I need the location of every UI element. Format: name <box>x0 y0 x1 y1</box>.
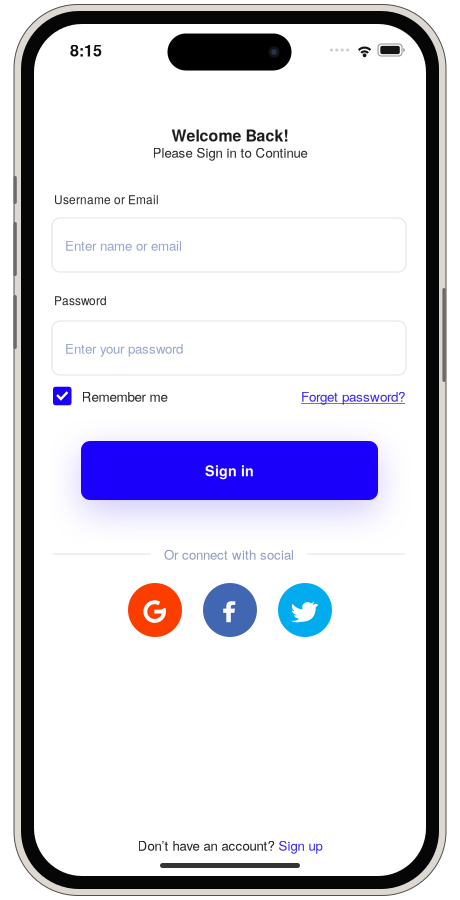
staticText: Sign up <box>278 835 322 854</box>
button[interactable]: Enter name or email <box>52 218 406 272</box>
staticText: Enter name or email <box>65 235 182 255</box>
staticText: Forget password? <box>301 386 405 406</box>
staticText: Username or Email <box>54 190 159 207</box>
staticText: Please Sign in to Continue <box>152 142 307 161</box>
staticText: Or connect with social <box>164 544 294 563</box>
button[interactable]: Sign up <box>278 835 322 854</box>
staticText: Don’t have an account? <box>137 835 274 854</box>
staticText: Sign in <box>205 460 254 481</box>
button[interactable]: Sign in with Google <box>128 583 182 637</box>
staticText: Password <box>54 291 107 308</box>
button[interactable]: Sign in with Twitter <box>278 583 332 637</box>
staticText: Remember me <box>81 386 167 406</box>
button[interactable]: Remember me <box>53 386 167 406</box>
button[interactable]: Enter your password <box>52 321 406 375</box>
staticText: Welcome Back! <box>171 124 288 146</box>
button[interactable]: Sign in <box>81 441 378 500</box>
staticText: Enter your password <box>65 338 183 358</box>
button[interactable]: Forget password? <box>301 386 405 406</box>
button[interactable]: Sign in with Facebook <box>203 583 257 637</box>
staticText: 8:15 <box>70 38 102 61</box>
